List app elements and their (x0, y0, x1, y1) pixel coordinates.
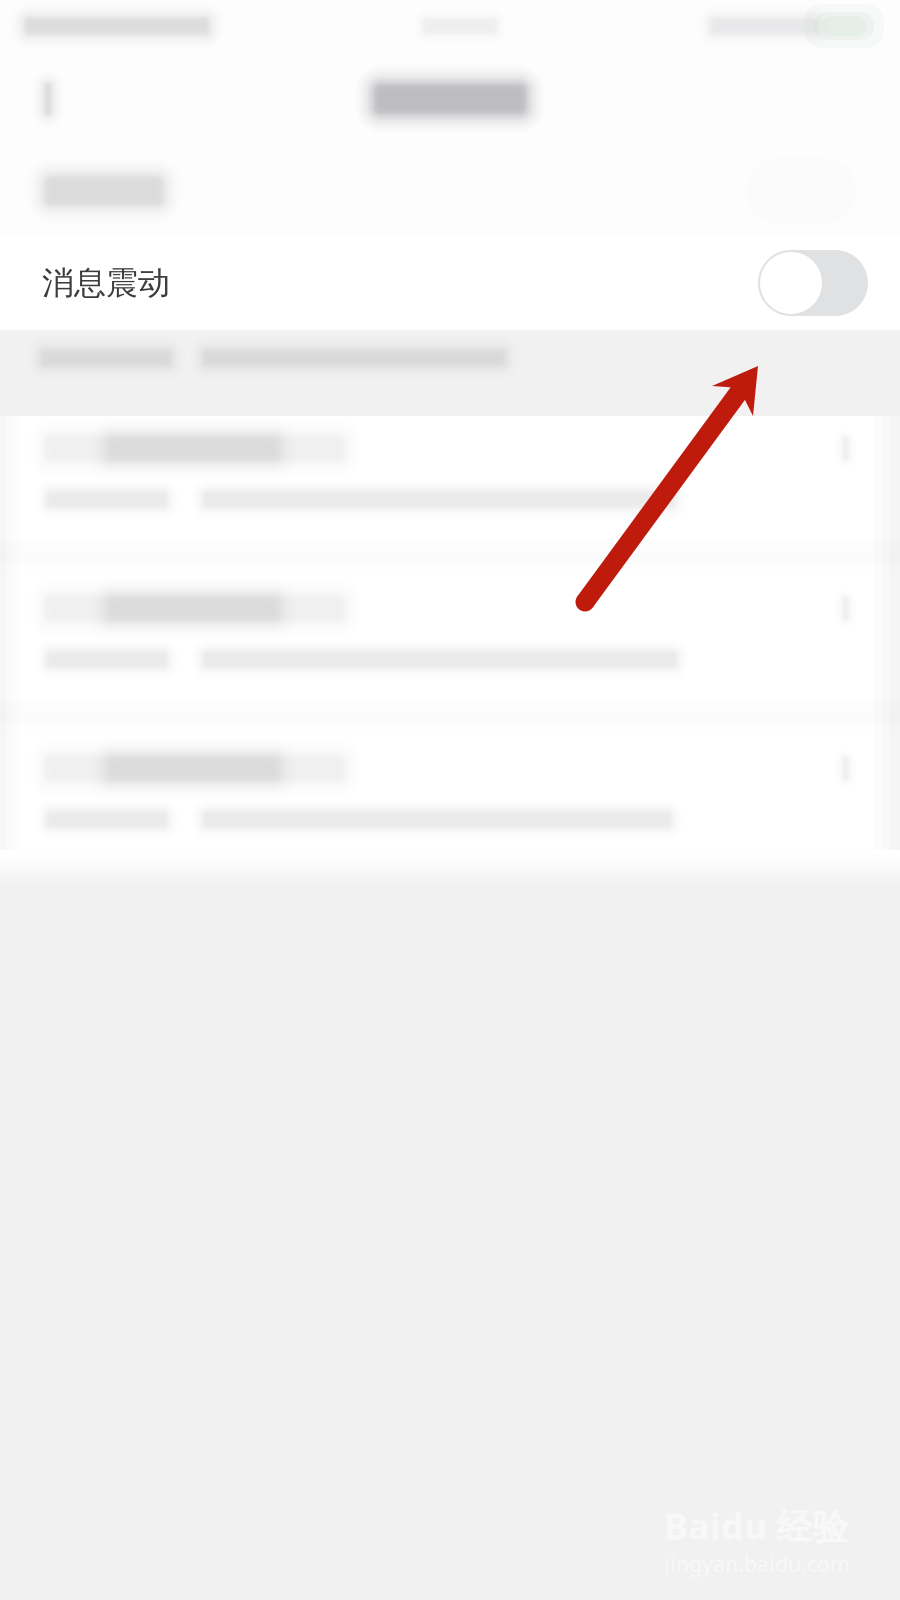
button[interactable] (0, 146, 900, 236)
button[interactable]: Back (0, 52, 96, 146)
button[interactable] (0, 416, 900, 530)
button[interactable] (0, 736, 900, 850)
staticText: Baidu 经验 (664, 1502, 848, 1550)
staticText: 消息震动 (42, 263, 170, 303)
button[interactable]: 消息震动 (0, 236, 900, 330)
button[interactable] (0, 576, 900, 690)
